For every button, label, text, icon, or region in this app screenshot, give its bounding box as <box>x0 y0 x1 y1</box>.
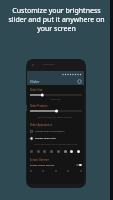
staticText: Slider Size <box>30 88 43 92</box>
button[interactable]: Slider colour option 7 <box>70 150 73 153</box>
button[interactable]: Slider colour option 2 <box>37 150 40 153</box>
staticText: Slider Size <box>50 98 61 101</box>
button[interactable] <box>30 93 82 97</box>
staticText: Enable Screen Dimmer <box>30 164 55 167</box>
button[interactable]: Change slider transparency <box>30 129 82 133</box>
button[interactable]: Enable Screen Dimmer <box>30 163 82 167</box>
button[interactable]: Slider colour option 6 <box>64 150 67 153</box>
button[interactable]: Slider <box>27 77 84 85</box>
staticText: Slider Appearance <box>30 123 53 127</box>
staticText: Screen Dimmer <box>30 158 49 162</box>
staticText: Change slider color <box>35 137 56 140</box>
button[interactable]: Change slider color <box>30 136 82 140</box>
staticText: Click a colored circle to change slider … <box>34 143 78 146</box>
button[interactable]: Settings <box>77 79 82 84</box>
staticText: Customize your brightness slider and put… <box>8 6 105 33</box>
button[interactable]: Slider colour option 8 <box>77 150 80 153</box>
button[interactable]: Slider colour option 5 <box>57 150 60 153</box>
button[interactable]: Slider colour option 3 <box>43 150 46 153</box>
button[interactable]: Slider colour option 4 <box>50 150 53 153</box>
staticText: Slider Position <box>30 104 48 108</box>
button[interactable]: Slider colour option 1 <box>30 150 33 153</box>
staticText: Distance from left edge of screen <box>38 116 73 119</box>
button[interactable] <box>30 109 82 113</box>
staticText: Change slider transparency <box>35 130 65 133</box>
staticText: Slider <box>30 79 40 84</box>
